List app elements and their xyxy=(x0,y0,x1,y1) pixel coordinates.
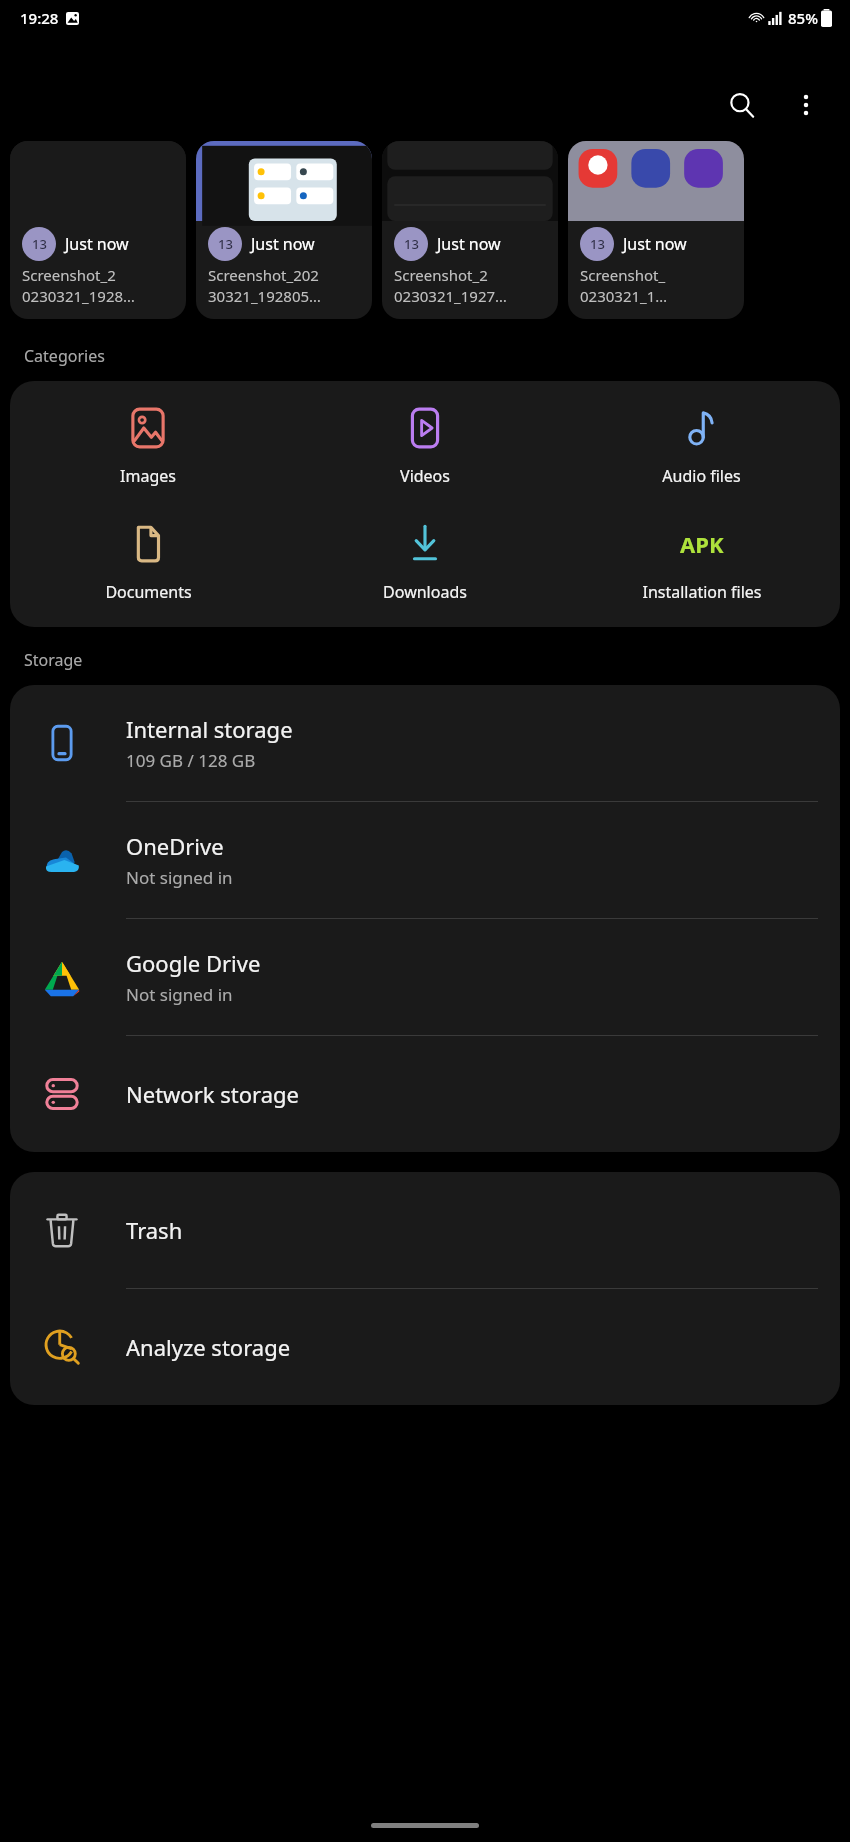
staticText: Internal storage xyxy=(126,714,293,744)
staticText: Categories xyxy=(24,345,105,367)
button[interactable]: 13 xyxy=(382,141,558,319)
staticText: 109 GB / 128 GB xyxy=(126,749,256,772)
staticText: Audio files xyxy=(662,465,741,487)
staticText: Google Drive xyxy=(126,948,261,978)
staticText: Videos xyxy=(400,465,450,487)
staticText: Just now xyxy=(251,233,315,255)
button[interactable]: More options xyxy=(780,79,832,131)
staticText: Analyze storage xyxy=(126,1332,291,1362)
button[interactable]: APK xyxy=(563,515,840,609)
staticText: 13 xyxy=(32,235,47,253)
button[interactable]: Internal storage xyxy=(10,685,840,801)
staticText: 13 xyxy=(590,235,605,253)
staticText: Just now xyxy=(437,233,501,255)
staticText: APK xyxy=(680,529,724,559)
button[interactable]: Analyze storage xyxy=(10,1289,840,1405)
button[interactable]: Downloads xyxy=(286,515,563,609)
staticText: Documents xyxy=(105,581,192,603)
button[interactable]: Audio files xyxy=(563,399,840,493)
staticText: 13 xyxy=(218,235,233,253)
button[interactable]: Trash xyxy=(10,1172,840,1288)
staticText: Screenshot_202 30321_192805… xyxy=(208,265,321,307)
staticText: 13 xyxy=(404,235,419,253)
button[interactable]: Images xyxy=(10,399,286,493)
button[interactable]: Google Drive xyxy=(10,919,840,1035)
button[interactable]: 13 xyxy=(10,141,186,319)
button[interactable]: 13 xyxy=(568,141,744,319)
staticText: 85% xyxy=(788,8,818,28)
staticText: Installation files xyxy=(642,581,762,603)
staticText: Trash xyxy=(126,1215,183,1245)
staticText: Network storage xyxy=(126,1079,299,1109)
staticText: Screenshot_2 0230321_1928… xyxy=(22,265,135,307)
button[interactable]: Search xyxy=(716,79,768,131)
staticText: Downloads xyxy=(383,581,467,603)
staticText: Screenshot_2 0230321_1927… xyxy=(394,265,507,307)
staticText: Screenshot_ 0230321_1… xyxy=(580,265,668,307)
staticText: Not signed in xyxy=(126,866,233,889)
staticText: Not signed in xyxy=(126,983,233,1006)
button[interactable]: Network storage xyxy=(10,1036,840,1152)
button[interactable]: Documents xyxy=(10,515,286,609)
staticText: OneDrive xyxy=(126,831,224,861)
button[interactable]: OneDrive xyxy=(10,802,840,918)
button[interactable]: 13 xyxy=(196,141,372,319)
staticText: Just now xyxy=(65,233,129,255)
staticText: Storage xyxy=(24,649,83,671)
staticText: Images xyxy=(120,465,176,487)
button[interactable]: Videos xyxy=(286,399,563,493)
staticText: 19:28 xyxy=(20,8,59,28)
staticText: Just now xyxy=(623,233,687,255)
